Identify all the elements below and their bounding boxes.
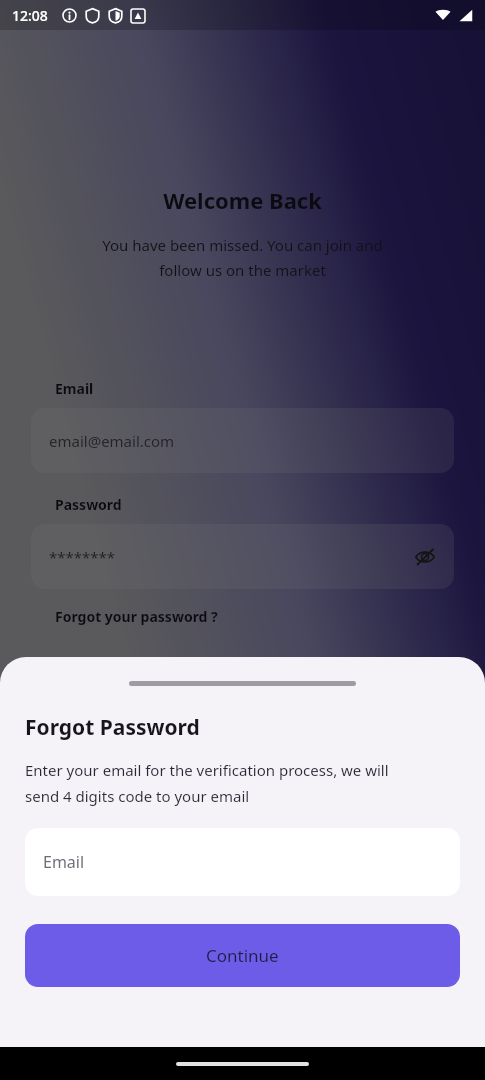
button[interactable]: Continue [25,924,460,987]
staticText: Email [55,379,94,398]
staticText: 12:08 [12,6,48,25]
button[interactable]: email@email.com [31,408,454,473]
button[interactable] [0,0,485,1080]
button[interactable]: Forgot your password ? [55,607,218,626]
button[interactable]: ******** [31,524,454,589]
staticText: Continue [206,944,279,967]
staticText: Welcome Back [0,185,485,215]
staticText: Enter your email for the verification pr… [25,760,389,807]
staticText: ******** [49,547,116,567]
staticText: You have been missed. You can join and f… [40,235,445,280]
staticText: Email [43,851,85,873]
button[interactable]: Toggle password visibility [408,540,442,574]
button[interactable]: Email [25,828,460,896]
staticText: Password [55,495,122,514]
staticText: email@email.com [49,431,175,451]
staticText: Forgot Password [25,713,200,742]
